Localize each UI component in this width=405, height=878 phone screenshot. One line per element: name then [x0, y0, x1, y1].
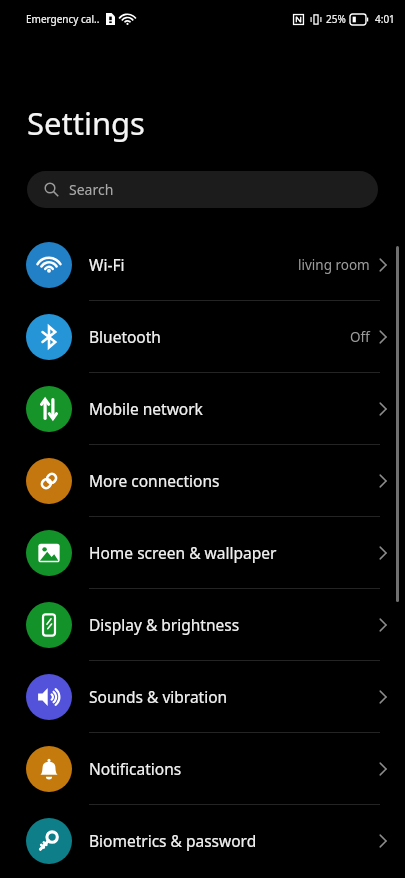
button[interactable]: Search — [27, 171, 378, 208]
button[interactable]: Biometrics & password — [0, 805, 405, 876]
staticText: Search — [69, 180, 114, 199]
staticText: Notifications — [89, 758, 379, 779]
other: Search — [44, 182, 59, 197]
staticText: Emergency cal.. — [26, 12, 100, 26]
button[interactable]: Home screen & wallpaper — [0, 517, 405, 589]
staticText: 25% — [326, 12, 346, 26]
button[interactable]: Mobile network — [0, 373, 405, 445]
staticText: Settings — [27, 102, 145, 144]
button[interactable]: Bluetooth — [0, 301, 405, 373]
button[interactable]: Sounds & vibration — [0, 661, 405, 733]
staticText: Biometrics & password — [89, 830, 379, 851]
button[interactable]: Wi-Fi — [0, 229, 405, 301]
staticText: Bluetooth — [89, 326, 350, 347]
button[interactable]: Display & brightness — [0, 589, 405, 661]
staticText: Display & brightness — [89, 614, 379, 635]
staticText: living room — [298, 256, 370, 274]
button[interactable]: Notifications — [0, 733, 405, 805]
button[interactable]: More connections — [0, 445, 405, 517]
staticText: Home screen & wallpaper — [89, 542, 379, 563]
staticText: More connections — [89, 470, 379, 491]
staticText: Off — [350, 328, 370, 346]
staticText: Mobile network — [89, 398, 379, 419]
staticText: 4:01 — [375, 12, 395, 26]
staticText: Sounds & vibration — [89, 686, 379, 707]
staticText: Wi-Fi — [89, 254, 298, 275]
